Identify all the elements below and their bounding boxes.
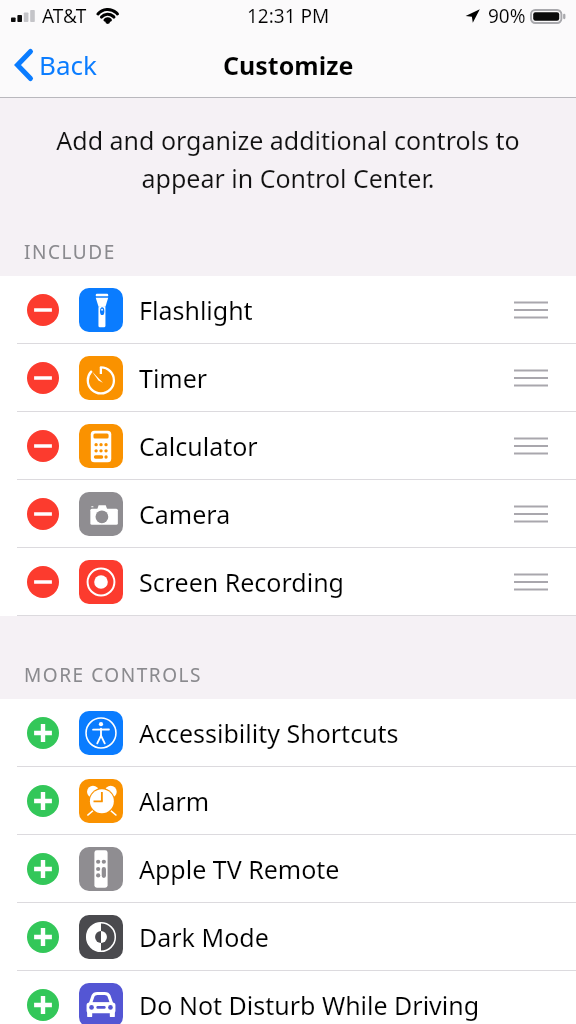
staticText: Accessibility Shortcuts (139, 716, 399, 750)
button[interactable]: Add Do Not Disturb While Driving (0, 971, 576, 1024)
button[interactable]: Remove Calculator (0, 412, 576, 480)
staticText: Dark Mode (139, 920, 269, 954)
button[interactable]: Back (0, 31, 109, 98)
other: Remove Screen Recording (27, 566, 59, 598)
other: Remove Camera (27, 498, 59, 530)
other: Remove Calculator (27, 430, 59, 462)
staticText: Customize (223, 48, 354, 82)
button[interactable]: Remove Camera (0, 480, 576, 548)
staticText: AT&T (42, 3, 87, 29)
other: Remove Timer (27, 362, 59, 394)
staticText: 90% (488, 3, 526, 29)
button[interactable]: Add Alarm (0, 767, 576, 835)
button[interactable]: Add Dark Mode (0, 903, 576, 971)
staticText: Calculator (139, 429, 258, 463)
button[interactable]: Add Accessibility Shortcuts (0, 699, 576, 767)
other: Add Alarm (27, 785, 59, 817)
button[interactable]: Remove Timer (0, 344, 576, 412)
staticText: Add and organize additional controls to … (48, 123, 528, 194)
button[interactable]: Remove Screen Recording (0, 548, 576, 616)
staticText: MORE CONTROLS (24, 662, 203, 688)
other: Add Apple TV Remote (27, 853, 59, 885)
staticText: Do Not Disturb While Driving (139, 988, 480, 1022)
staticText: Camera (139, 497, 231, 531)
staticText: Flashlight (139, 293, 253, 327)
staticText: Back (39, 47, 97, 82)
staticText: Alarm (139, 784, 210, 818)
staticText: Screen Recording (139, 565, 344, 599)
other: Remove Flashlight (27, 294, 59, 326)
button[interactable]: Remove Flashlight (0, 276, 576, 344)
staticText: Timer (139, 361, 208, 395)
staticText: 12:31 PM (247, 3, 330, 29)
button[interactable]: Add Apple TV Remote (0, 835, 576, 903)
other: Add Dark Mode (27, 921, 59, 953)
staticText: Apple TV Remote (139, 852, 340, 886)
staticText: INCLUDE (24, 239, 116, 265)
other: Add Accessibility Shortcuts (27, 717, 59, 749)
other: Add Do Not Disturb While Driving (27, 989, 59, 1021)
